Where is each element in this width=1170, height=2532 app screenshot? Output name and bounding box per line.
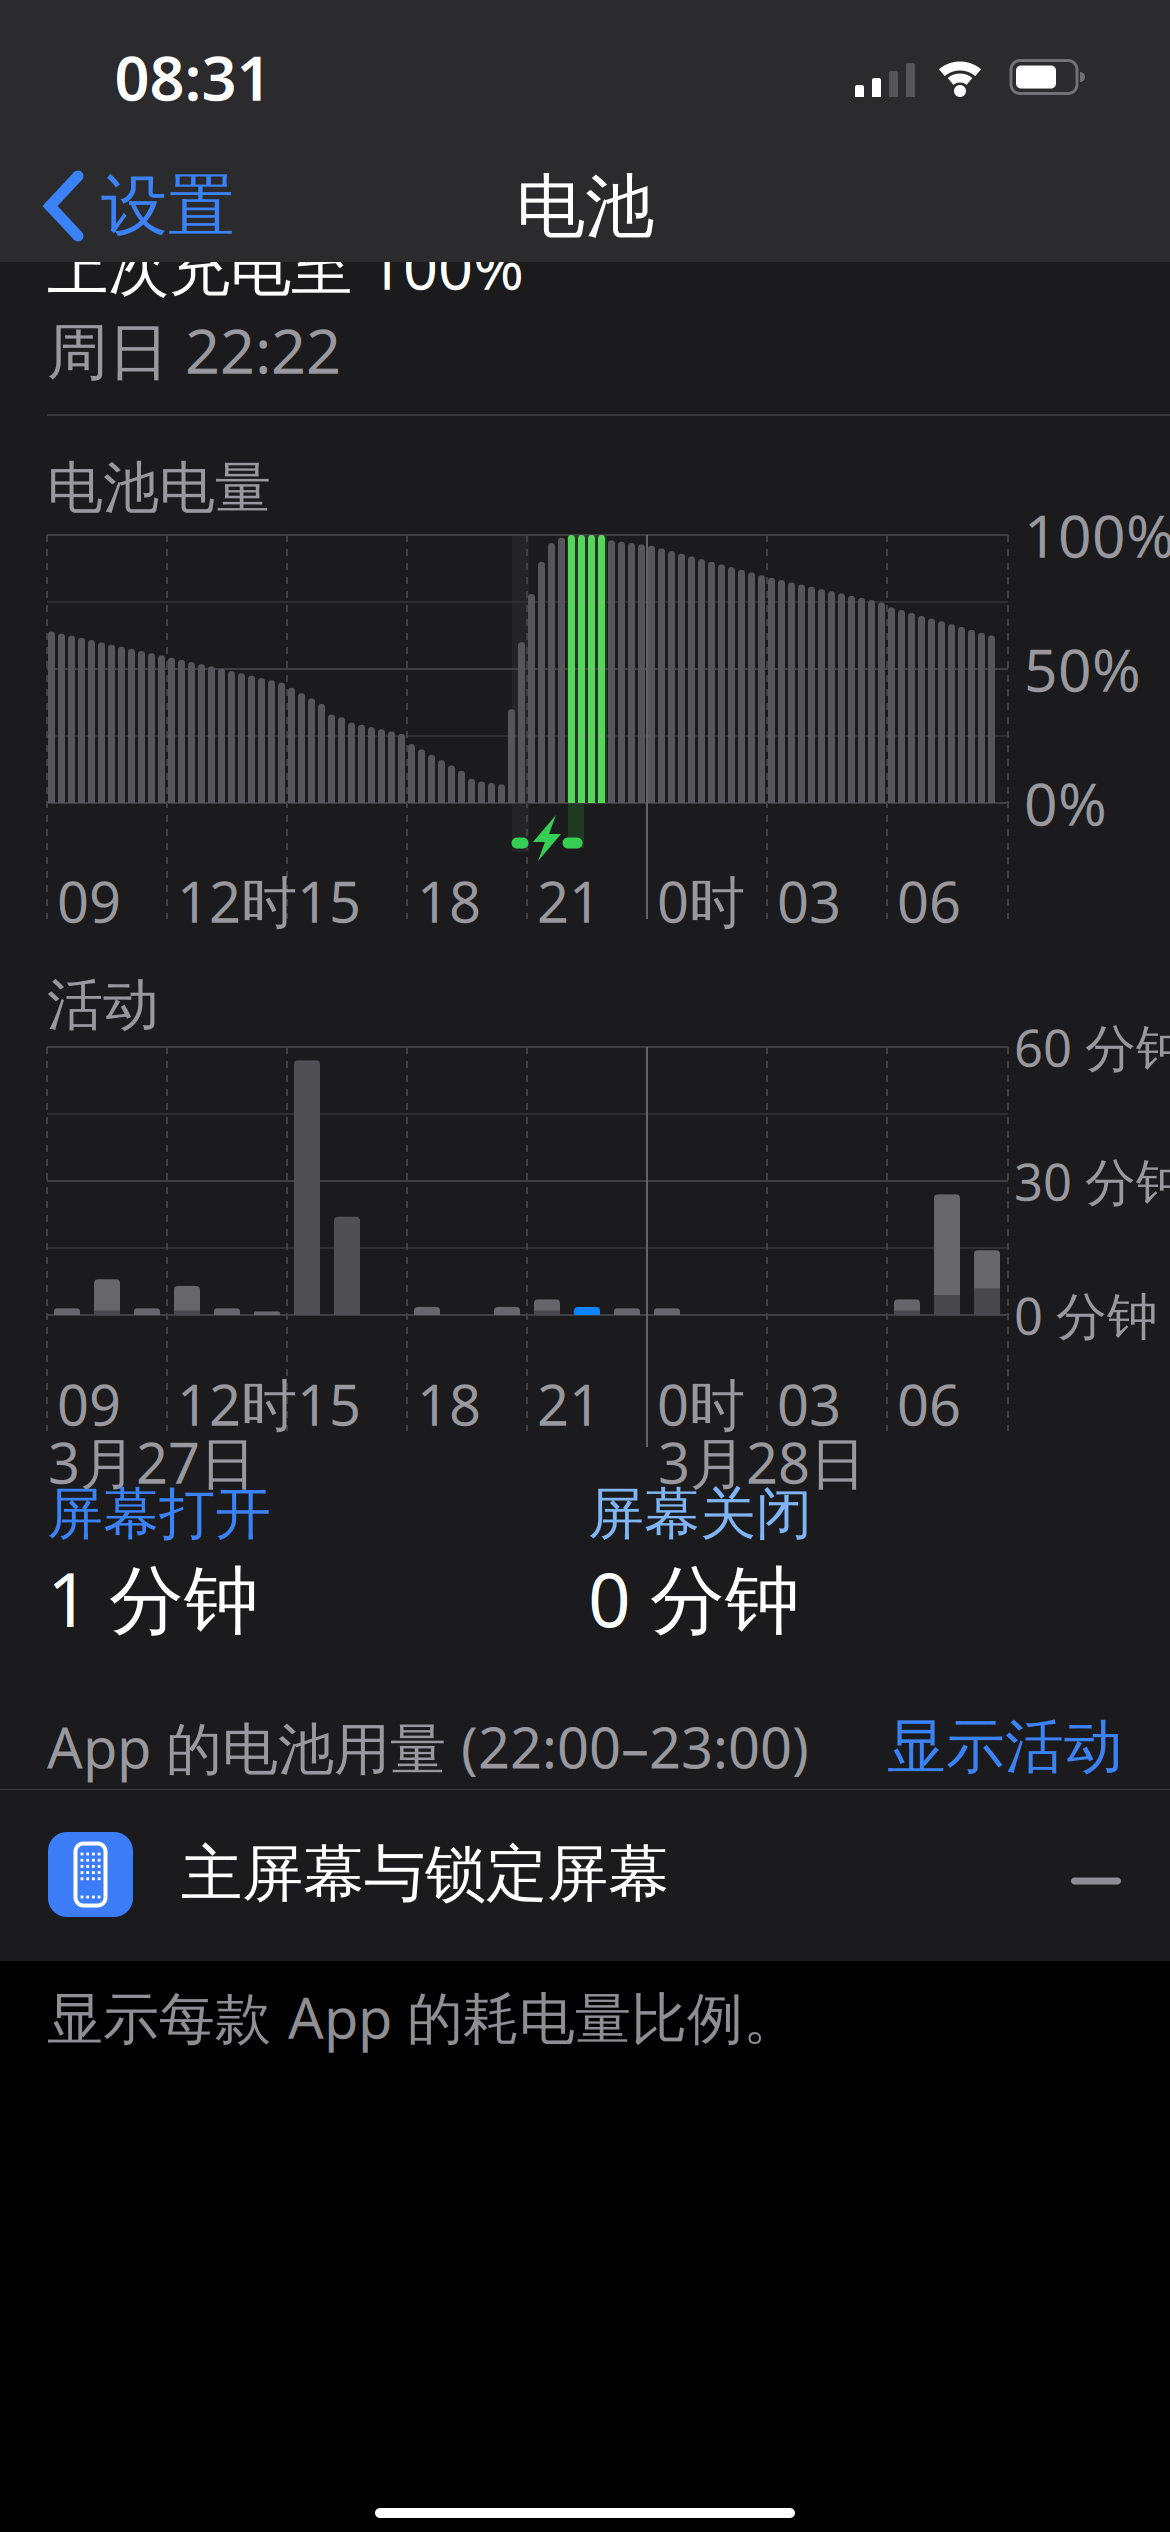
staticText: 60 分钟	[1014, 1013, 1170, 1081]
button[interactable]: 显示活动	[0, 0, 1170, 2532]
staticText: 50%	[1024, 630, 1141, 708]
staticText: 06	[897, 864, 961, 938]
staticText: App 的电池用量 (22:00–23:00)	[47, 1710, 809, 1784]
staticText: 电池	[516, 164, 654, 250]
staticText: 上次充电至 100%	[47, 225, 524, 307]
button[interactable]: 主屏幕与锁定屏幕	[0, 0, 1170, 2532]
staticText: 21	[537, 864, 601, 938]
staticText: 18	[417, 1367, 481, 1441]
staticText: 12时	[177, 1367, 297, 1441]
staticText: 0%	[1024, 764, 1107, 842]
staticText: 03	[777, 864, 841, 938]
staticText: 15	[297, 1367, 361, 1441]
staticText: 03	[777, 1367, 841, 1441]
staticText: 1 分钟	[47, 1548, 259, 1648]
staticText: 屏幕关闭	[588, 1480, 812, 1548]
staticText: 0时	[657, 1367, 745, 1441]
staticText: 周日 22:22	[47, 309, 341, 391]
staticText: 21	[537, 1367, 601, 1441]
staticText: 电池电量	[47, 454, 271, 522]
staticText: 3月27日	[48, 1425, 256, 1499]
staticText: 0 分钟	[588, 1548, 800, 1648]
staticText: 30 分钟	[1014, 1147, 1170, 1215]
button[interactable]: 返回设置	[45, 165, 235, 247]
staticText: 显示每款 App 的耗电量比例。	[47, 1980, 799, 2054]
staticText: 0 分钟	[1014, 1281, 1158, 1349]
staticText: 08:31	[114, 36, 271, 118]
staticText: 设置	[101, 165, 235, 247]
staticText: 09	[57, 1367, 121, 1441]
staticText: 显示活动	[887, 1711, 1123, 1783]
staticText: 18	[417, 864, 481, 938]
staticText: 12时	[177, 864, 297, 938]
staticText: 0时	[657, 864, 745, 938]
staticText: 06	[897, 1367, 961, 1441]
staticText: 主屏幕与锁定屏幕	[181, 1836, 669, 1912]
staticText: 活动	[47, 971, 159, 1039]
staticText: 3月28日	[658, 1425, 866, 1499]
staticText: 15	[297, 864, 361, 938]
staticText: 屏幕打开	[47, 1480, 271, 1548]
staticText: 100%	[1024, 496, 1170, 574]
staticText: 09	[57, 864, 121, 938]
